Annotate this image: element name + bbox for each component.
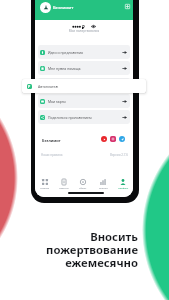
staticText: ₽ bbox=[82, 24, 85, 30]
staticText: P bbox=[28, 84, 31, 89]
button[interactable]: Рейтинг bbox=[93, 177, 113, 191]
button[interactable]: Мои карты bbox=[38, 94, 130, 108]
staticText: Рейтинг bbox=[99, 187, 108, 190]
staticText: Наши правила bbox=[41, 153, 63, 157]
button[interactable]: Новости bbox=[54, 177, 73, 191]
staticText: Безлимит bbox=[53, 5, 74, 11]
button[interactable]: Профиль bbox=[113, 177, 133, 191]
staticText: Безлимит bbox=[42, 138, 61, 143]
staticText: Профиль bbox=[118, 187, 129, 190]
button[interactable]: P bbox=[22, 79, 146, 93]
button[interactable]: Наши правила bbox=[41, 153, 63, 157]
button[interactable]: Instagram bbox=[110, 136, 116, 142]
staticText: Мне нужна помощь bbox=[48, 66, 81, 71]
staticText: Сборы bbox=[79, 187, 87, 190]
staticText: Идеи и предложения bbox=[48, 50, 84, 55]
button[interactable]: Безлимит bbox=[40, 2, 74, 13]
button[interactable]: Telegram bbox=[119, 136, 125, 142]
button[interactable]: ₽ bbox=[72, 22, 97, 31]
staticText: Автоплатёж bbox=[48, 83, 68, 88]
staticText: Мои карты bbox=[48, 99, 66, 104]
button[interactable]: Идеи и предложения bbox=[38, 45, 130, 59]
staticText: Новости bbox=[59, 187, 69, 190]
staticText: Версия 2.7.6 bbox=[35, 153, 128, 157]
button[interactable]: Поделиться приложением bbox=[38, 110, 130, 124]
button[interactable]: Главная bbox=[35, 177, 54, 191]
button[interactable]: YouTube bbox=[101, 136, 107, 142]
staticText: Автоплатеж bbox=[38, 84, 59, 89]
button[interactable]: Сборы bbox=[73, 177, 93, 191]
button[interactable]: Автоплатёж bbox=[38, 78, 130, 92]
button[interactable]: QR код bbox=[125, 4, 130, 9]
staticText: Вносить пожертвование ежемесячно bbox=[8, 229, 138, 271]
staticText: Поделиться приложением bbox=[48, 115, 92, 120]
staticText: Главная bbox=[40, 187, 50, 190]
staticText: Мои пожертвования bbox=[35, 29, 133, 33]
button[interactable]: Мне нужна помощь bbox=[38, 61, 130, 75]
